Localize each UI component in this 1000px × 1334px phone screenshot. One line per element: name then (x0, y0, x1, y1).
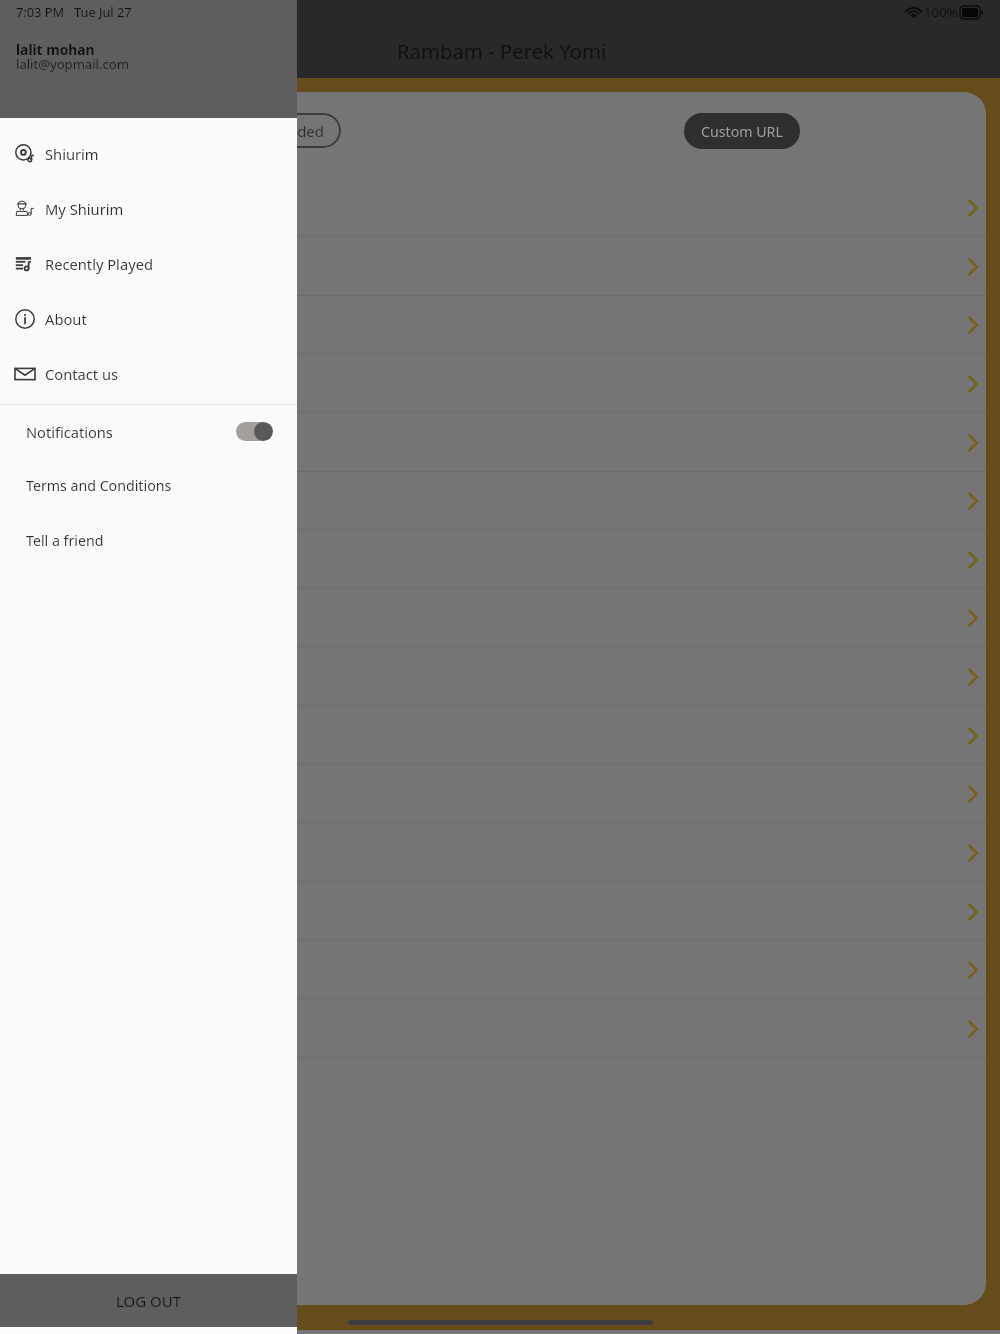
staticText: Contact us (45, 364, 119, 384)
button[interactable]: Open (942, 421, 986, 465)
staticText: Custom URL (701, 122, 783, 141)
staticText: 100% (924, 3, 958, 21)
staticText: 7:03 PM (16, 3, 65, 20)
button[interactable]: Shiurim (0, 126, 297, 181)
staticText: Recently Played (45, 254, 153, 274)
button[interactable]: Open (0, 588, 986, 647)
staticText: Tell a friend (26, 531, 104, 550)
button[interactable]: Open (942, 479, 986, 523)
button[interactable]: Open (942, 714, 986, 758)
button[interactable]: Open (942, 596, 986, 640)
staticText: lalit mohan (16, 40, 95, 59)
button[interactable]: Tell a friend (0, 513, 297, 568)
button[interactable]: Open (0, 413, 986, 472)
button[interactable]: Open (0, 940, 986, 999)
button[interactable]: Recently Played (0, 236, 297, 291)
button[interactable]: Open (942, 538, 986, 582)
button[interactable]: Terms and Conditions (0, 458, 297, 513)
button[interactable]: Open (942, 303, 986, 347)
button[interactable]: My Shiurim (0, 181, 297, 236)
button[interactable]: Open (942, 362, 986, 406)
staticText: LOG OUT (116, 1291, 182, 1311)
button[interactable]: Open (942, 1007, 986, 1051)
button[interactable]: Open (942, 655, 986, 699)
staticText: Notifications (26, 422, 113, 442)
staticText: Downloaded (235, 121, 325, 141)
button[interactable]: Open (0, 354, 986, 413)
button[interactable]: Open (0, 530, 986, 589)
button[interactable]: Custom URL (684, 113, 800, 149)
button[interactable]: Open (0, 764, 986, 823)
button[interactable]: About (0, 291, 297, 346)
button[interactable]: Open (0, 295, 986, 354)
button[interactable]: Open (0, 237, 986, 296)
button[interactable]: LOG OUT (0, 1274, 297, 1327)
staticText: Shiurim (45, 144, 99, 164)
button[interactable]: Open (0, 999, 986, 1058)
button[interactable]: Open (0, 823, 986, 882)
button[interactable]: Open (0, 882, 986, 941)
button[interactable]: Open (942, 186, 986, 230)
button[interactable]: Open (942, 948, 986, 992)
button[interactable]: Notifications (0, 405, 297, 458)
button[interactable]: Open (942, 772, 986, 816)
staticText: My Shiurim (45, 199, 124, 219)
button[interactable]: Open (942, 890, 986, 934)
staticText: Tue Jul 27 (74, 3, 132, 20)
button[interactable]: Open (0, 178, 986, 237)
button[interactable]: Open (0, 471, 986, 530)
button[interactable]: Open (942, 245, 986, 289)
button[interactable]: Open (0, 647, 986, 706)
staticText: Terms and Conditions (26, 476, 172, 495)
button[interactable]: Open (0, 706, 986, 765)
button[interactable]: Open (942, 831, 986, 875)
staticText: Rambam - Perek Yomi (397, 37, 607, 65)
staticText: lalit@yopmail.com (16, 55, 129, 73)
button[interactable]: Contact us (0, 346, 297, 401)
staticText: About (45, 309, 87, 329)
button[interactable]: Downloaded (219, 113, 341, 148)
